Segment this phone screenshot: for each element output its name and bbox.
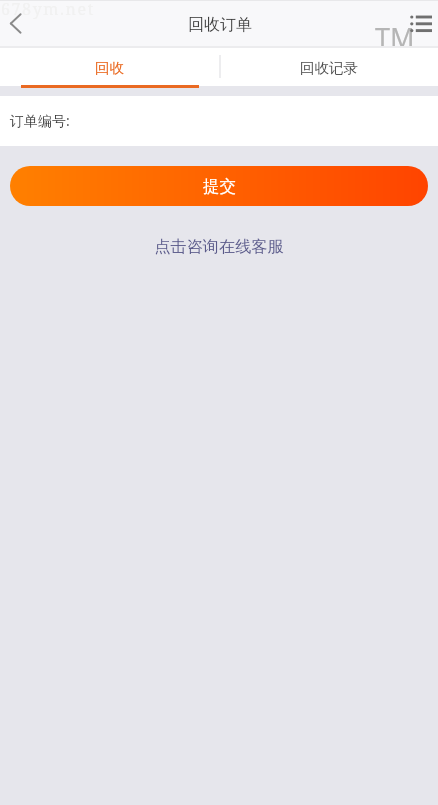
button[interactable]: 回收记录 bbox=[219, 48, 438, 86]
button[interactable]: Menu bbox=[394, 2, 438, 46]
button[interactable]: 点击咨询在线客服 bbox=[0, 229, 438, 263]
button[interactable]: 回收 bbox=[0, 48, 219, 86]
staticText: 回收 bbox=[95, 59, 124, 77]
staticText: TM bbox=[375, 19, 415, 56]
button[interactable]: 提交 bbox=[10, 166, 428, 206]
staticText: 678ym.net bbox=[1, 0, 95, 20]
button[interactable]: Back bbox=[0, 2, 44, 46]
staticText: 订单编号: bbox=[10, 111, 70, 130]
staticText: 回收订单 bbox=[188, 15, 252, 35]
button[interactable]: 订单编号输入框 bbox=[0, 96, 438, 146]
staticText: 提交 bbox=[203, 176, 236, 197]
staticText: 回收记录 bbox=[300, 59, 358, 77]
staticText: 点击咨询在线客服 bbox=[154, 236, 284, 256]
